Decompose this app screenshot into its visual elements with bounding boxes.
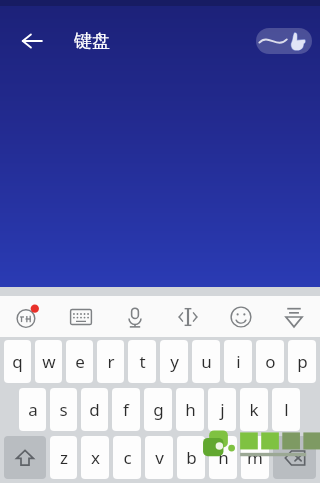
- staticText: u: [201, 350, 212, 373]
- staticText: t: [139, 350, 146, 373]
- button[interactable]: Input method: [0, 296, 54, 337]
- button[interactable]: r: [97, 340, 124, 383]
- button[interactable]: Hide keyboard: [267, 296, 320, 337]
- staticText: f: [123, 398, 129, 421]
- button[interactable]: Move cursor: [161, 296, 214, 337]
- button[interactable]: b: [177, 436, 205, 479]
- button[interactable]: u: [192, 340, 220, 383]
- staticText: c: [123, 446, 132, 469]
- staticText: s: [59, 398, 68, 421]
- button[interactable]: Back: [8, 17, 56, 65]
- staticText: p: [297, 350, 308, 373]
- button[interactable]: p: [288, 340, 316, 383]
- button[interactable]: Emoji: [214, 296, 267, 337]
- button[interactable]: k: [240, 388, 268, 431]
- staticText: b: [186, 446, 197, 469]
- button[interactable]: Keyboard layout: [54, 296, 108, 337]
- button[interactable]: j: [208, 388, 236, 431]
- button[interactable]: n: [209, 436, 237, 479]
- button[interactable]: q: [4, 340, 31, 383]
- staticText: a: [28, 398, 38, 421]
- button[interactable]: g: [144, 388, 172, 431]
- button[interactable]: s: [50, 388, 77, 431]
- button[interactable]: a: [19, 388, 46, 431]
- button[interactable]: i: [224, 340, 252, 383]
- button[interactable]: y: [160, 340, 188, 383]
- button[interactable]: d: [81, 388, 108, 431]
- button[interactable]: Voice input: [108, 296, 161, 337]
- button[interactable]: t: [128, 340, 156, 383]
- staticText: h: [185, 398, 196, 421]
- staticText: d: [89, 398, 100, 421]
- staticText: v: [155, 446, 164, 469]
- button[interactable]: Shift: [4, 436, 46, 479]
- staticText: w: [42, 350, 56, 373]
- button[interactable]: m: [241, 436, 269, 479]
- staticText: 键盘: [74, 30, 110, 53]
- button[interactable]: f: [112, 388, 140, 431]
- staticText: j: [220, 398, 225, 421]
- staticText: x: [91, 446, 100, 469]
- staticText: q: [12, 350, 23, 373]
- button[interactable]: v: [145, 436, 173, 479]
- staticText: z: [60, 446, 68, 469]
- button[interactable]: c: [113, 436, 141, 479]
- button[interactable]: z: [50, 436, 77, 479]
- staticText: n: [218, 446, 229, 469]
- staticText: e: [75, 350, 85, 373]
- staticText: k: [249, 398, 259, 421]
- button[interactable]: h: [176, 388, 204, 431]
- button[interactable]: e: [66, 340, 93, 383]
- button[interactable]: w: [35, 340, 62, 383]
- button[interactable]: o: [256, 340, 284, 383]
- button[interactable]: Gesture typing: [256, 28, 312, 54]
- staticText: m: [247, 446, 263, 469]
- staticText: l: [284, 398, 289, 421]
- staticText: o: [265, 350, 276, 373]
- button[interactable]: Delete: [273, 436, 316, 479]
- staticText: r: [107, 350, 115, 373]
- staticText: y: [170, 350, 179, 373]
- button[interactable]: l: [272, 388, 300, 431]
- staticText: i: [236, 350, 241, 373]
- staticText: g: [153, 398, 164, 421]
- button[interactable]: x: [81, 436, 109, 479]
